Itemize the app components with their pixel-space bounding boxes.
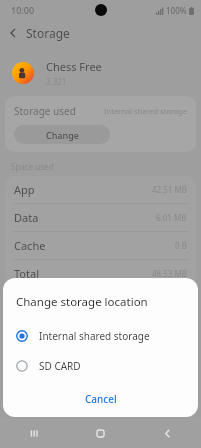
staticText: Storage [26, 25, 70, 41]
button[interactable]: Internal shared storage [3, 321, 198, 351]
button[interactable]: Chess Free [0, 58, 201, 88]
button[interactable]: Recents [0, 418, 67, 448]
staticText: SD CARD [39, 359, 81, 373]
button[interactable]: Home [67, 418, 134, 448]
button[interactable]: Change [14, 125, 110, 144]
staticText: Cancel [85, 392, 117, 406]
staticText: Internal shared storage [104, 106, 187, 116]
staticText: Total [14, 266, 39, 281]
staticText: Space used [11, 161, 54, 172]
staticText: 0 B [175, 240, 187, 251]
button[interactable]: Total [5, 260, 196, 287]
staticText: Chess Free [46, 59, 102, 74]
button[interactable]: Back [0, 20, 26, 46]
staticText: Internal shared storage [39, 329, 150, 343]
staticText: 100% [166, 5, 187, 16]
staticText: Storage used [14, 104, 76, 118]
button[interactable]: Back [134, 418, 201, 448]
button[interactable]: SD CARD [3, 351, 198, 381]
staticText: Change storage location [16, 294, 148, 310]
button[interactable]: Data [5, 204, 196, 231]
staticText: Data [14, 210, 39, 225]
staticText: App [14, 182, 35, 197]
staticText: 10:00 [11, 4, 35, 16]
staticText: 6.01 MB [156, 212, 187, 223]
staticText: Change [46, 129, 79, 141]
staticText: 3.321 [46, 76, 67, 87]
staticText: 42.51 MB [152, 184, 187, 195]
button[interactable]: App [5, 176, 196, 203]
staticText: 48.53 MB [152, 268, 187, 279]
staticText: Cache [14, 238, 46, 253]
button[interactable]: Cancel [3, 387, 198, 411]
button[interactable]: Cache [5, 232, 196, 259]
